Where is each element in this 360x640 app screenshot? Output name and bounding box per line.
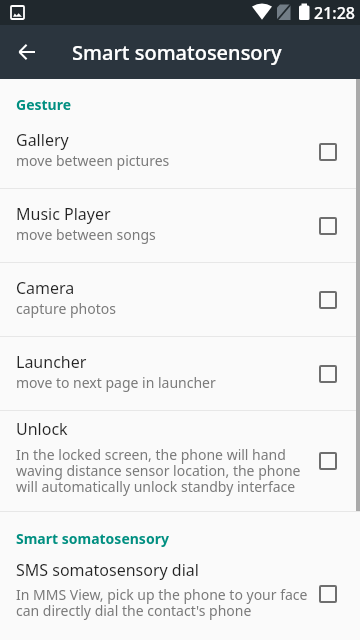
staticText: move between pictures [16, 151, 170, 170]
button[interactable]: Camera [0, 263, 360, 336]
staticText: In MMS View, pick up the phone to your f… [16, 585, 308, 620]
staticText: Smart somatosensory [72, 39, 282, 66]
button[interactable]: Unlock [0, 411, 360, 511]
staticText: Gallery [16, 129, 69, 151]
staticText: Smart somatosensory [16, 529, 169, 548]
staticText: Camera [16, 277, 75, 299]
staticText: Unlock [16, 418, 68, 440]
staticText: In the locked screen, the phone will han… [16, 445, 301, 496]
staticText: SMS somatosensory dial [16, 559, 199, 581]
staticText: move to next page in launcher [16, 373, 216, 392]
staticText: Gesture [16, 95, 72, 114]
staticText: move between songs [16, 225, 156, 244]
button[interactable]: Gallery [0, 115, 360, 188]
staticText: Launcher [16, 351, 87, 373]
button[interactable]: Music Player [0, 189, 360, 262]
staticText: 21:28 [314, 2, 355, 24]
staticText: capture photos [16, 299, 116, 318]
button[interactable]: Launcher [0, 337, 360, 410]
button[interactable]: SMS somatosensory dial [0, 552, 360, 635]
staticText: Music Player [16, 203, 111, 225]
button[interactable] [0, 25, 54, 79]
